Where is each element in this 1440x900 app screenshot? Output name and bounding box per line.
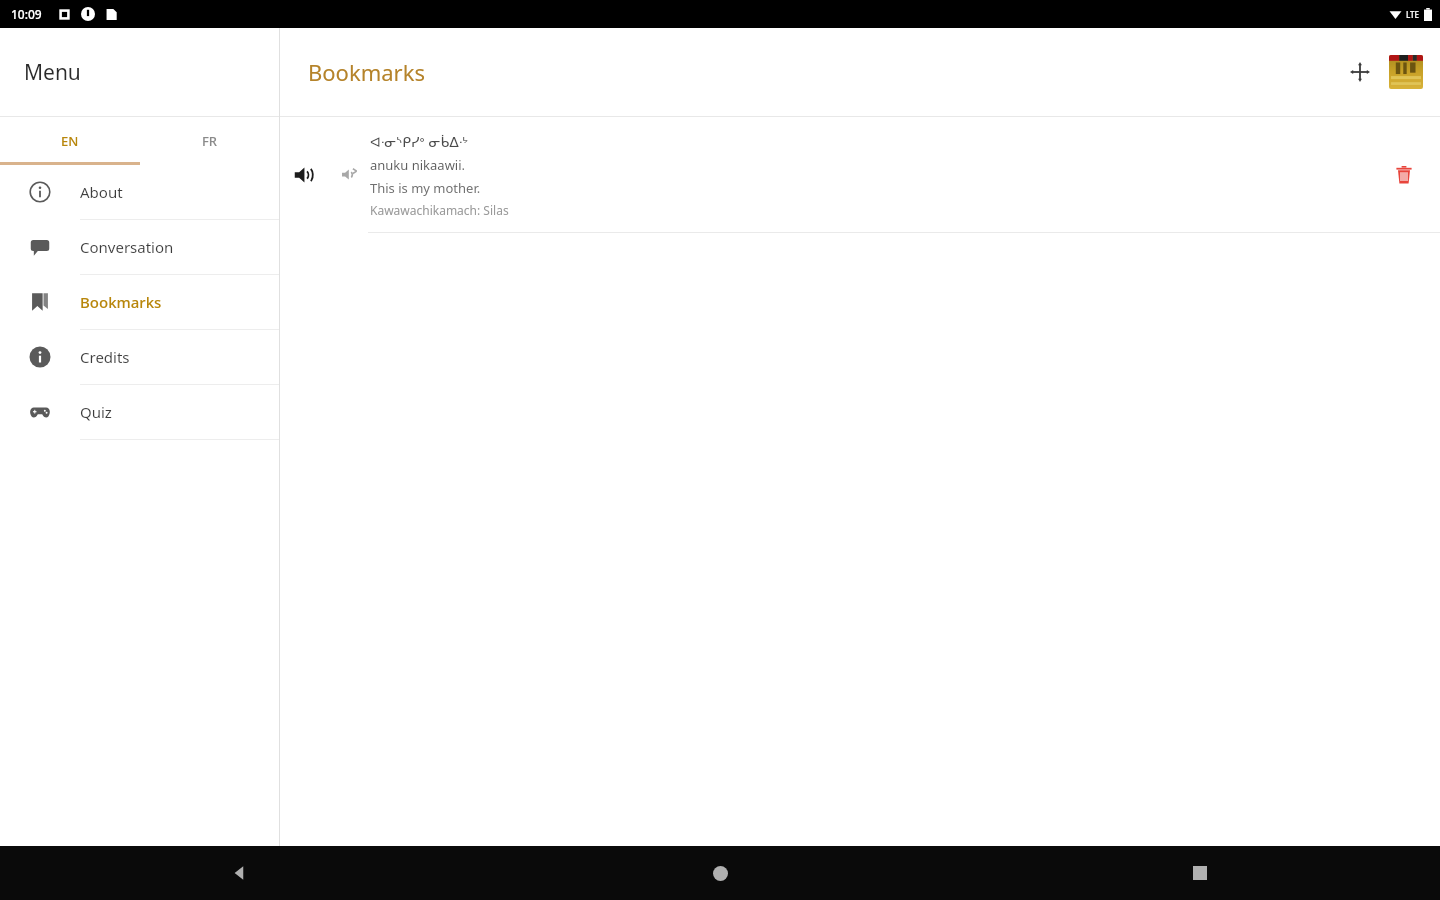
- button[interactable]: Home: [480, 846, 960, 900]
- button[interactable]: FR: [140, 117, 280, 165]
- staticText: Bookmarks: [308, 57, 425, 87]
- button[interactable]: Back: [0, 846, 480, 900]
- staticText: Conversation: [80, 237, 174, 257]
- staticText: FR: [202, 132, 218, 150]
- button[interactable]: EN: [0, 117, 140, 165]
- staticText: Quiz: [80, 402, 112, 422]
- staticText: This is my mother.: [370, 179, 481, 197]
- button[interactable]: Credits: [0, 330, 280, 384]
- staticText: 10:09: [11, 6, 42, 22]
- staticText: anuku nikaawii.: [370, 156, 466, 174]
- button[interactable]: Conversation: [0, 220, 280, 274]
- staticText: Credits: [80, 347, 130, 367]
- button[interactable]: Play audio: [280, 117, 328, 232]
- button[interactable]: Open logo: [1386, 52, 1426, 92]
- button[interactable]: Play audio: [280, 117, 1440, 232]
- button[interactable]: About: [0, 165, 280, 219]
- staticText: LTE: [1406, 9, 1420, 20]
- staticText: Bookmarks: [80, 292, 162, 312]
- button[interactable]: Quiz: [0, 385, 280, 439]
- staticText: About: [80, 182, 123, 202]
- staticText: Menu: [24, 58, 81, 87]
- button[interactable]: Move: [1340, 52, 1380, 92]
- staticText: EN: [61, 132, 79, 150]
- button[interactable]: Recent apps: [960, 846, 1440, 900]
- button[interactable]: Delete bookmark: [1368, 117, 1440, 232]
- button[interactable]: Bookmarks: [0, 275, 280, 329]
- staticText: Kawawachikamach: Silas: [370, 202, 509, 218]
- button[interactable]: Play slow audio: [328, 117, 370, 232]
- staticText: ᐊᐧᓂᔅᑭᓯᐤ ᓂᑳᐃᐧᔾ: [370, 132, 469, 151]
